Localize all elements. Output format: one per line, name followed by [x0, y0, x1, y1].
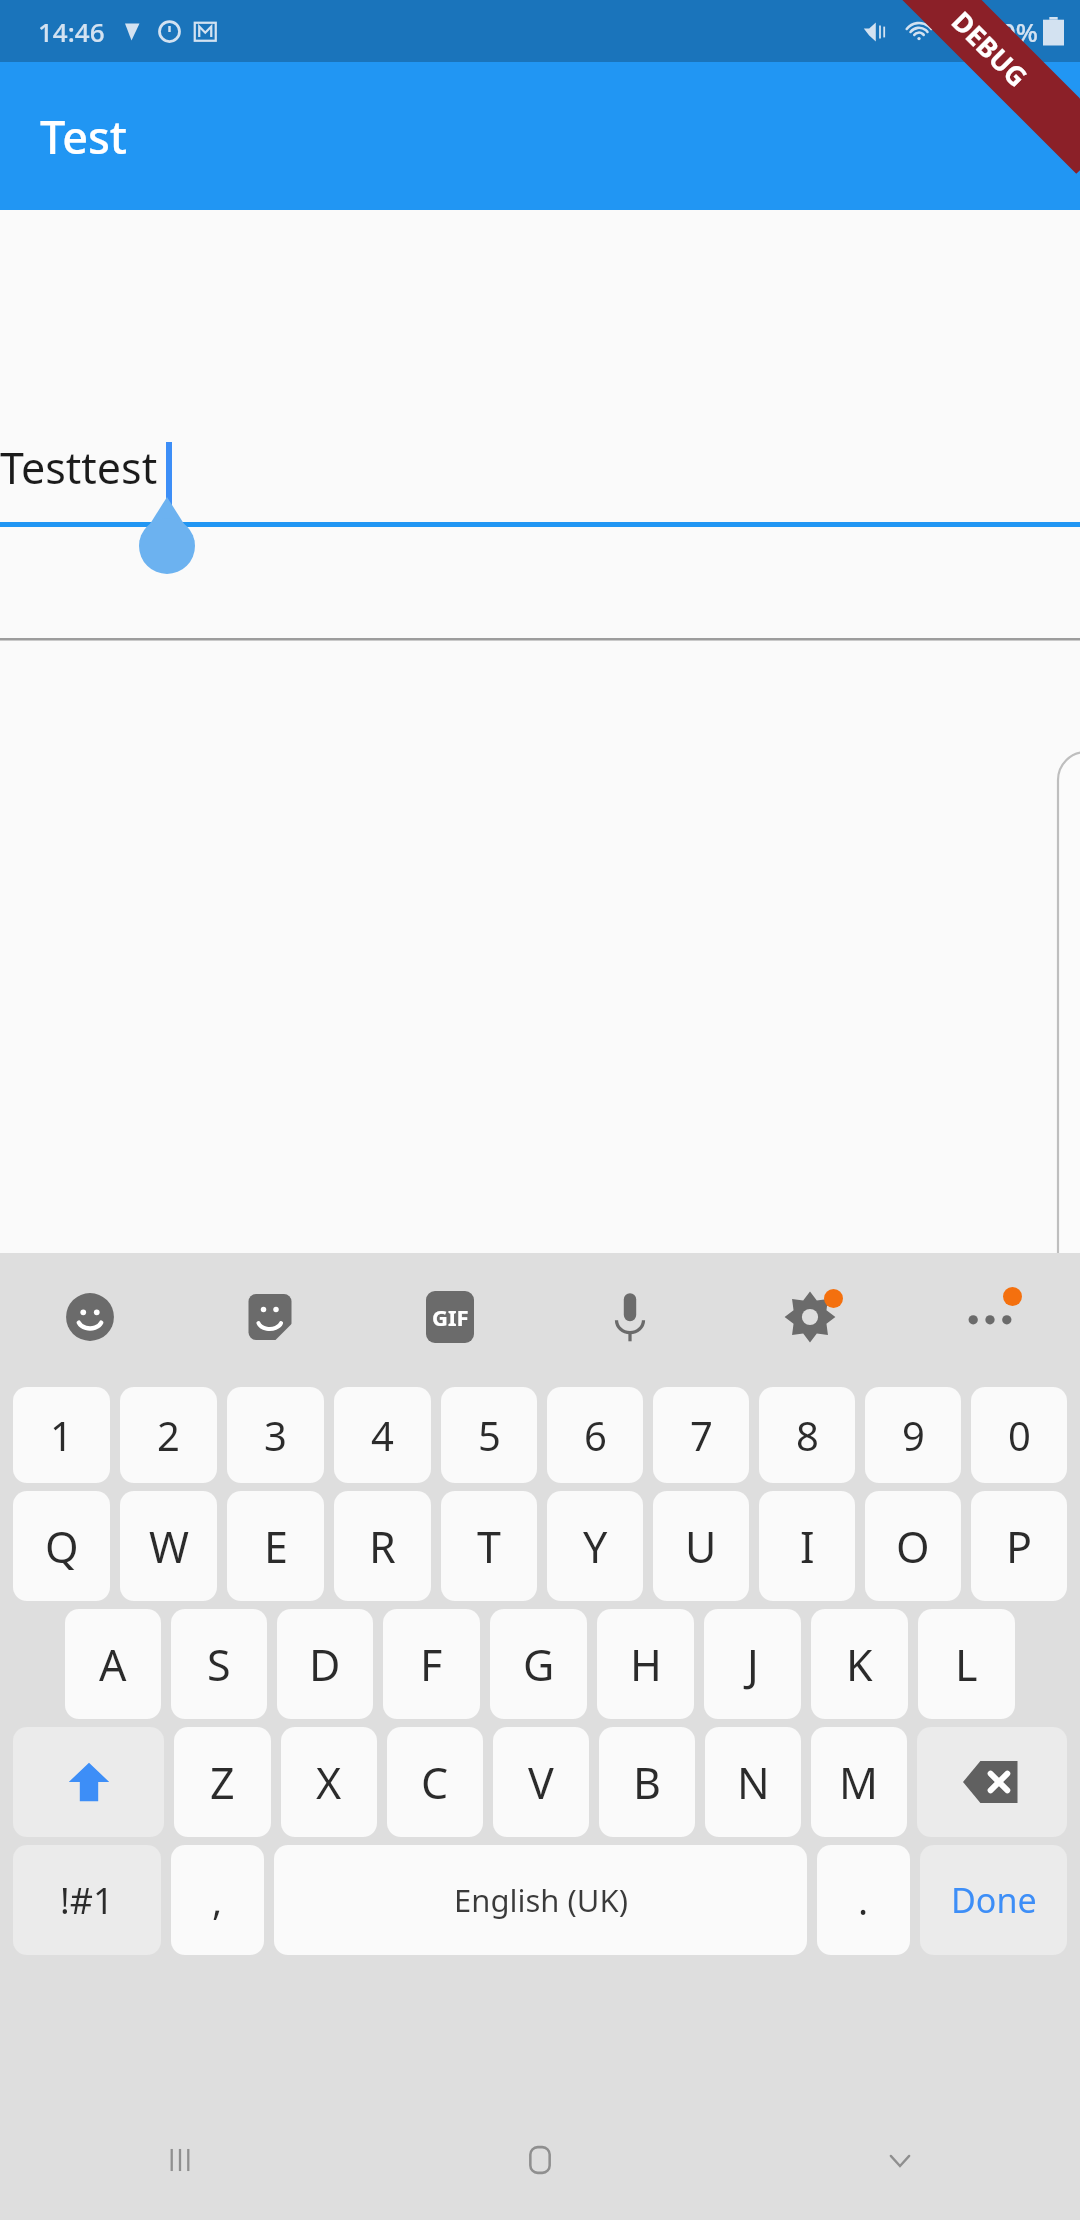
button[interactable]: D	[277, 1609, 373, 1719]
staticText: E	[264, 1517, 288, 1576]
staticText: English (UK)	[454, 1879, 628, 1921]
staticText: DEBUG	[944, 3, 1036, 95]
staticText: GIF	[432, 1302, 469, 1332]
button[interactable]: Z	[174, 1727, 271, 1837]
staticText: 1	[50, 1408, 73, 1462]
button[interactable]: 5	[441, 1387, 537, 1483]
staticText: G	[523, 1635, 555, 1694]
button[interactable]: K	[811, 1609, 908, 1719]
staticText: C	[421, 1753, 449, 1812]
staticText: ,	[212, 1874, 223, 1926]
button[interactable]: G	[490, 1609, 587, 1719]
staticText: M	[839, 1753, 879, 1812]
staticText: O	[896, 1517, 930, 1576]
button[interactable]: Recent apps	[0, 2100, 360, 2220]
staticText: Testtest	[0, 438, 158, 497]
button[interactable]: L	[918, 1609, 1015, 1719]
staticText: 4	[371, 1408, 394, 1462]
button[interactable]: N	[705, 1727, 801, 1837]
staticText: N	[737, 1753, 770, 1812]
staticText: 9	[902, 1408, 925, 1462]
staticText: T	[477, 1517, 501, 1576]
button[interactable]: X	[281, 1727, 377, 1837]
button[interactable]: U	[653, 1491, 749, 1601]
staticText: 90%	[986, 14, 1038, 49]
staticText: 2	[157, 1408, 180, 1462]
staticText: Done	[951, 1877, 1037, 1923]
button[interactable]: P	[971, 1491, 1067, 1601]
button[interactable]: Home	[360, 2100, 720, 2220]
staticText: 7	[690, 1408, 713, 1462]
staticText: 5	[478, 1408, 501, 1462]
staticText: 8	[796, 1408, 819, 1462]
staticText: Q	[45, 1517, 79, 1576]
staticText: K	[846, 1635, 873, 1694]
button[interactable]: Backspace	[917, 1727, 1067, 1837]
button[interactable]: 4	[334, 1387, 431, 1483]
staticText: Test	[40, 106, 128, 167]
button[interactable]: 6	[547, 1387, 643, 1483]
button[interactable]: Shift	[13, 1727, 164, 1837]
button[interactable]: More options	[900, 1253, 1080, 1381]
staticText: W	[149, 1517, 189, 1576]
button[interactable]: Keyboard settings	[720, 1253, 900, 1381]
button[interactable]: V	[493, 1727, 589, 1837]
button[interactable]: 0	[971, 1387, 1067, 1483]
staticText: 14:46	[38, 14, 105, 49]
button[interactable]: F	[383, 1609, 480, 1719]
staticText: X	[316, 1753, 342, 1812]
button[interactable]: B	[599, 1727, 695, 1837]
staticText: R	[369, 1517, 396, 1576]
button[interactable]: E	[227, 1491, 324, 1601]
button[interactable]: Q	[13, 1491, 110, 1601]
button[interactable]: H	[597, 1609, 694, 1719]
button[interactable]: ,	[171, 1845, 264, 1955]
button[interactable]: T	[441, 1491, 537, 1601]
staticText: S	[207, 1635, 231, 1694]
staticText: H	[630, 1635, 662, 1694]
button[interactable]: Emoji	[0, 1253, 180, 1381]
button[interactable]: 1	[13, 1387, 110, 1483]
button[interactable]: 7	[653, 1387, 749, 1483]
button[interactable]: 8	[759, 1387, 855, 1483]
button[interactable]: .	[817, 1845, 910, 1955]
staticText: 6	[584, 1408, 607, 1462]
staticText: F	[420, 1635, 443, 1694]
staticText: J	[747, 1635, 759, 1694]
button[interactable]: 3	[227, 1387, 324, 1483]
button[interactable]: 9	[865, 1387, 961, 1483]
staticText: L	[955, 1635, 978, 1694]
button[interactable]: !#1	[13, 1845, 161, 1955]
staticText: Z	[210, 1753, 235, 1812]
button[interactable]: Done	[920, 1845, 1067, 1955]
button[interactable]: W	[120, 1491, 217, 1601]
button[interactable]: I	[759, 1491, 855, 1601]
staticText: Y	[583, 1517, 608, 1576]
button[interactable]: C	[387, 1727, 483, 1837]
staticText: 3	[264, 1408, 287, 1462]
staticText: 0	[1008, 1408, 1031, 1462]
button[interactable]: 2	[120, 1387, 217, 1483]
button[interactable]: O	[865, 1491, 961, 1601]
button[interactable]: J	[704, 1609, 801, 1719]
button[interactable]: R	[334, 1491, 431, 1601]
staticText: D	[309, 1635, 341, 1694]
button[interactable]: GIF	[360, 1253, 540, 1381]
staticText: !#1	[60, 1876, 114, 1925]
staticText: B	[633, 1753, 661, 1812]
staticText: P	[1006, 1517, 1033, 1576]
button[interactable]: Y	[547, 1491, 643, 1601]
staticText: .	[858, 1874, 869, 1926]
staticText: V	[528, 1753, 554, 1812]
button[interactable]: Voice input	[540, 1253, 720, 1381]
button[interactable]: S	[171, 1609, 267, 1719]
button[interactable]: English (UK)	[274, 1845, 807, 1955]
button[interactable]: A	[65, 1609, 161, 1719]
staticText: I	[800, 1517, 815, 1576]
staticText: U	[685, 1517, 717, 1576]
button[interactable]: M	[811, 1727, 907, 1837]
staticText: A	[99, 1635, 127, 1694]
button[interactable]: Stickers	[180, 1253, 360, 1381]
